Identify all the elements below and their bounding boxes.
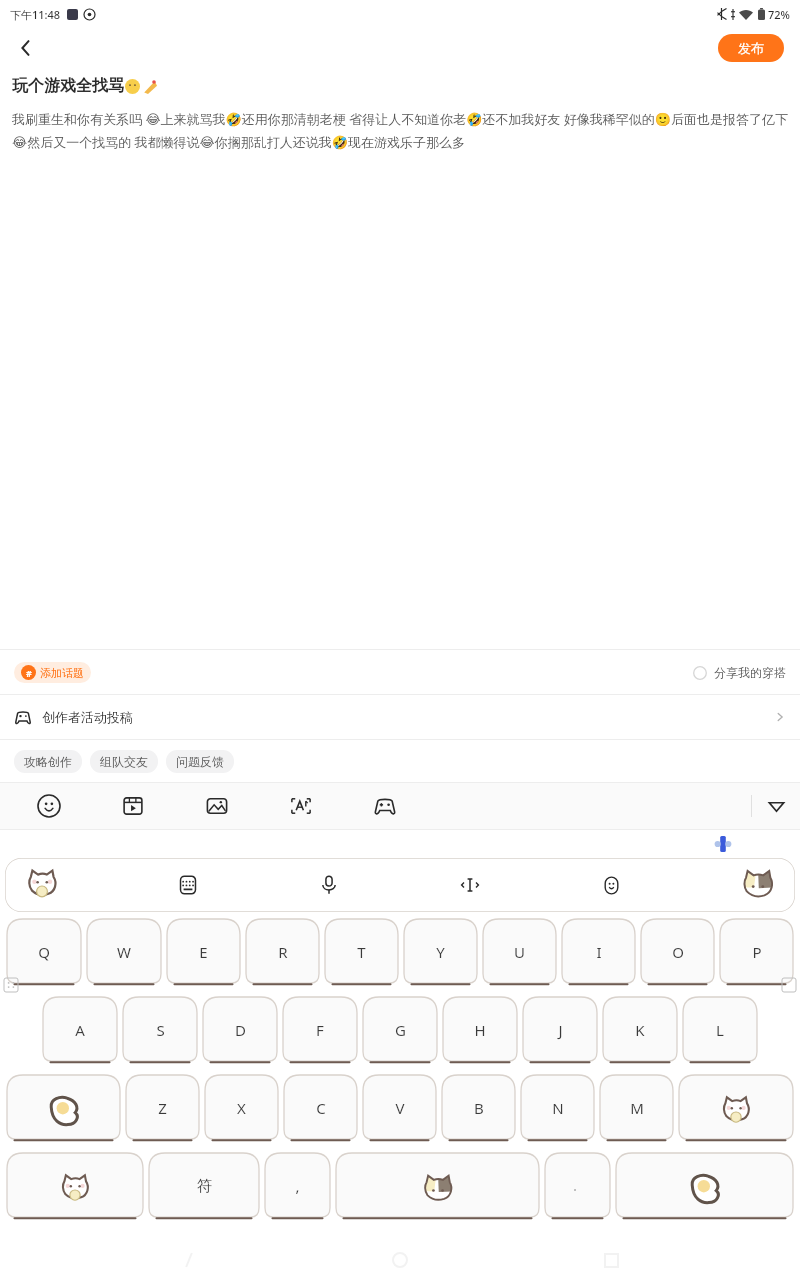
button[interactable]: Move cursor [453,868,487,902]
button[interactable]: A [42,996,118,1070]
staticText: 72% [768,7,790,22]
button[interactable]: Y [403,918,478,992]
staticText: H [474,1020,486,1040]
button[interactable]: V [362,1074,437,1148]
button[interactable]: Emoji [34,791,64,821]
button[interactable]: U [482,918,557,992]
button[interactable]: Text style [286,791,316,821]
staticText: 创作者活动投稿 [42,709,133,725]
button[interactable]: 。 [544,1152,611,1226]
staticText: Z [158,1098,167,1118]
button[interactable]: B [441,1074,516,1148]
button[interactable]: Game [370,791,400,821]
button[interactable]: D [202,996,278,1070]
button[interactable]: Image [202,791,232,821]
staticText: O [672,942,684,962]
staticText: 问题反馈 [176,754,224,769]
staticText: B [474,1098,484,1118]
staticText: D [235,1020,246,1040]
button[interactable]: Video [118,791,148,821]
staticText: 下午11:48 [10,7,61,22]
button[interactable]: Shift [6,1074,121,1148]
button[interactable]: W [86,918,162,992]
staticText: W [117,942,131,962]
staticText: X [237,1098,246,1118]
staticText: 组队交友 [100,754,148,769]
button[interactable]: Sticker [735,862,781,908]
button[interactable]: Collapse keyboard [752,783,800,829]
button[interactable]: K [602,996,678,1070]
staticText: C [316,1098,326,1118]
button[interactable]: N [520,1074,595,1148]
staticText: L [716,1020,724,1040]
button[interactable]: , [264,1152,331,1226]
staticText: P [752,942,762,962]
staticText: G [395,1020,406,1040]
staticText: 玩个游戏全找骂 [12,76,124,96]
staticText: K [635,1020,645,1040]
staticText: Y [436,942,445,962]
staticText: 符 [197,1177,212,1196]
button[interactable]: R [245,918,320,992]
button[interactable]: P [719,918,794,992]
button[interactable]: Back [8,30,44,66]
button[interactable]: Recents [589,1240,633,1280]
button[interactable]: Resize keyboard [782,978,796,992]
button[interactable]: Keyboard [171,868,205,902]
button[interactable]: O [640,918,715,992]
staticText: V [395,1098,405,1118]
staticText: S [156,1020,165,1040]
staticText: M [630,1098,644,1118]
staticText: F [316,1020,324,1040]
button[interactable]: Switch input [6,1152,144,1226]
staticText: 发布 [738,40,764,56]
button[interactable]: E [166,918,241,992]
staticText: A [75,1020,85,1040]
staticText: , [295,1176,300,1196]
staticText: J [558,1020,563,1040]
button[interactable]: H [442,996,518,1070]
button[interactable]: 分享我的穿搭 [693,665,786,680]
staticText: # [26,667,32,679]
button[interactable]: Enter [615,1152,794,1226]
staticText: Q [38,942,50,962]
staticText: 我刷重生和你有关系吗 😂上来就骂我🤣还用你那清朝老梗 省得让人不知道你老🤣还不加… [12,110,788,150]
button[interactable]: Keyboard layout [4,978,18,992]
button[interactable]: Backspace [678,1074,794,1148]
button[interactable]: Space [335,1152,540,1226]
staticText: I [596,942,602,962]
staticText: U [514,942,525,962]
button[interactable]: Voice input [312,868,346,902]
button[interactable]: 攻略创作 [14,750,82,773]
button[interactable]: L [682,996,758,1070]
button[interactable]: # [14,662,91,683]
staticText: R [278,942,288,962]
button[interactable]: C [283,1074,358,1148]
staticText: 添加话题 [40,666,84,680]
staticText: E [199,942,208,962]
button[interactable]: J [522,996,598,1070]
button[interactable]: 创作者活动投稿 [0,695,800,739]
button[interactable]: Theme [19,862,65,908]
staticText: 分享我的穿搭 [714,665,786,680]
staticText: N [552,1098,564,1118]
button[interactable]: G [362,996,438,1070]
button[interactable]: Emoji [594,868,628,902]
button[interactable]: 发布 [718,34,784,62]
button[interactable]: 符 [148,1152,260,1226]
button[interactable]: S [122,996,198,1070]
button[interactable]: 组队交友 [90,750,158,773]
staticText: 攻略创作 [24,754,72,769]
button[interactable]: 问题反馈 [166,750,234,773]
button[interactable]: F [282,996,358,1070]
staticText: T [357,942,366,962]
button[interactable]: T [324,918,399,992]
button[interactable]: X [204,1074,279,1148]
button[interactable]: Z [125,1074,200,1148]
button[interactable]: M [599,1074,674,1148]
staticText: 。 [573,1181,582,1192]
button[interactable]: I [561,918,636,992]
button[interactable]: Q [6,918,82,992]
